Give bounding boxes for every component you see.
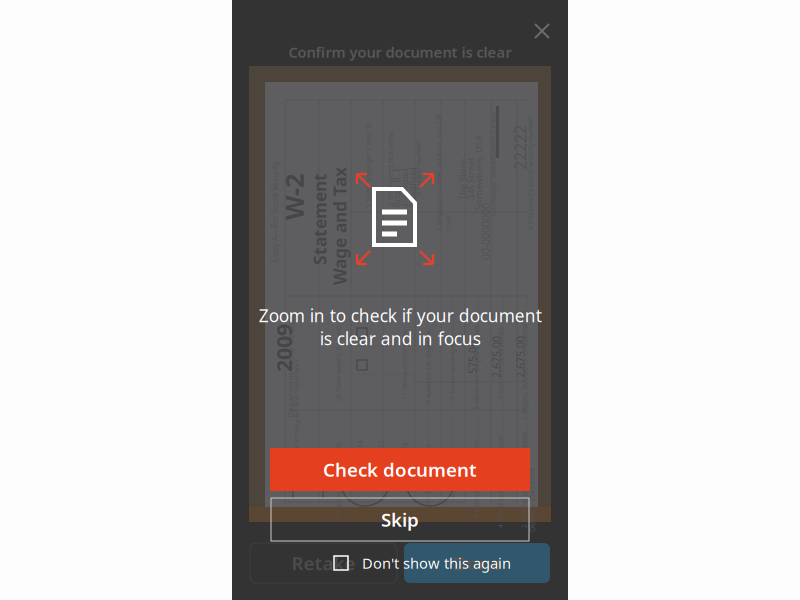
staticText: 2 Federal income tax withheld (467, 467, 563, 475)
button[interactable]: Check document (270, 448, 530, 491)
staticText: Readfield (373, 162, 414, 174)
staticText: 2009 (244, 318, 292, 346)
staticText: 22222 (480, 119, 525, 141)
staticText: 4 Social security tax withheld (443, 467, 535, 475)
staticText: Skip (381, 507, 419, 532)
staticText: b Employer identification number (438, 157, 544, 165)
staticText: 126.00 (490, 445, 523, 459)
staticText: 16 State wages, tips, etc. (288, 348, 366, 356)
staticText: For Privacy Act and Paperwork (241, 395, 337, 403)
staticText: 2,675.00 (461, 336, 503, 350)
staticText: 3 Social security wages (450, 346, 523, 354)
staticText: Statement (265, 198, 357, 221)
staticText: Check document (323, 457, 477, 482)
staticText: 5 Medicare wages and tips (421, 351, 506, 359)
staticText: 18 Local wages, tips, etc. (288, 464, 366, 472)
staticText: OMB No. 1545-0008 (492, 488, 556, 496)
button[interactable]: Skip (271, 498, 529, 541)
staticText: Brian B. E (357, 162, 398, 174)
button[interactable]: Close (520, 9, 564, 53)
staticText: Done (452, 551, 501, 575)
staticText: 456 Road (365, 162, 405, 174)
button[interactable]: Retake (250, 543, 397, 583)
staticText: c Employer's name, address, and ZIP code (381, 159, 497, 177)
staticText: a Employee's social security number (468, 164, 582, 172)
staticText: Wage and Tax (275, 208, 393, 231)
button[interactable]: Don't show this again (334, 550, 511, 576)
staticText: Zoom in to check if your document is cle… (258, 304, 541, 350)
staticText: Don't show this again (362, 553, 511, 573)
staticText: 37.34 (444, 447, 471, 461)
staticText: Somewhere, USA (434, 159, 509, 171)
staticText: Department of the Treasury (216, 338, 321, 348)
staticText: 575.00 (442, 337, 475, 351)
staticText: 1 Wages, tips, other compensation (464, 356, 573, 364)
staticText: Copy A—For Social Security (200, 182, 301, 192)
button[interactable]: Done (404, 543, 550, 583)
staticText: W-2 (244, 153, 290, 187)
staticText: 198.66 (466, 445, 499, 459)
staticText: Retake (291, 551, 355, 575)
staticText: 2,675.00 (485, 336, 527, 350)
staticText: Confirm your document is clear (288, 42, 511, 62)
staticText: 10 Dependent care (383, 455, 444, 463)
staticText: 6 Medicare tax withheld (424, 462, 501, 470)
